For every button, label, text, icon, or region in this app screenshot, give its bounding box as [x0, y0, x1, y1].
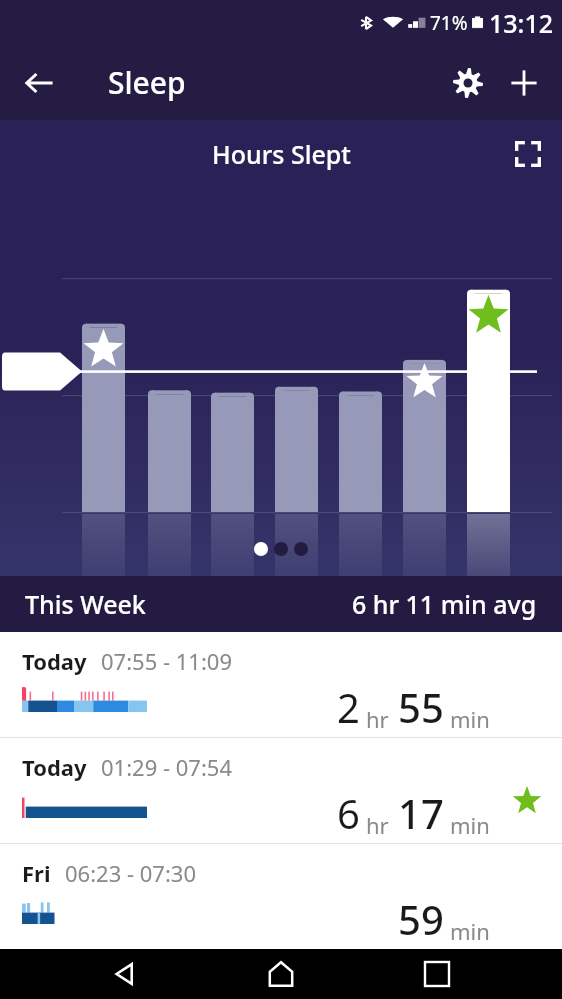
- staticText: Fri: [22, 858, 51, 888]
- button[interactable]: Settings: [440, 55, 496, 111]
- button[interactable]: Back: [96, 949, 156, 999]
- staticText: 01:29 - 07:54: [101, 752, 232, 782]
- staticText: min: [450, 916, 490, 946]
- staticText: 6: [337, 786, 360, 840]
- staticText: Sleep: [108, 62, 186, 103]
- staticText: 17: [398, 786, 444, 840]
- staticText: 13:12: [489, 6, 554, 40]
- button[interactable]: Today: [0, 632, 562, 737]
- button[interactable]: Add: [496, 55, 552, 111]
- button[interactable]: Back: [14, 57, 66, 109]
- staticText: min: [450, 704, 490, 734]
- staticText: This Week: [25, 587, 146, 621]
- button[interactable]: This Week: [0, 576, 562, 632]
- staticText: hr: [366, 810, 389, 840]
- staticText: 2: [337, 680, 360, 734]
- button[interactable]: Recent apps: [407, 949, 467, 999]
- staticText: 6 hr 11 min avg: [352, 587, 537, 621]
- staticText: 59: [398, 892, 444, 946]
- staticText: hr: [366, 704, 389, 734]
- staticText: 55: [398, 680, 444, 734]
- button[interactable]: Home: [251, 949, 311, 999]
- button[interactable]: Fri: [0, 844, 562, 949]
- staticText: 07:55 - 11:09: [101, 646, 232, 676]
- staticText: Hours Slept: [212, 137, 351, 171]
- staticText: Today: [22, 752, 87, 782]
- staticText: min: [450, 810, 490, 840]
- staticText: 71%: [430, 10, 468, 36]
- button[interactable]: Fullscreen: [502, 128, 554, 180]
- staticText: Today: [22, 646, 87, 676]
- staticText: 06:23 - 07:30: [65, 858, 196, 888]
- button[interactable]: Today: [0, 738, 562, 843]
